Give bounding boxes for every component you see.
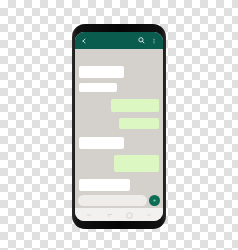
button[interactable]: Back — [79, 36, 89, 46]
button[interactable]: Back — [103, 209, 115, 221]
button[interactable]: Search — [136, 35, 147, 46]
button[interactable]: Home — [123, 209, 135, 221]
button[interactable]: Recents — [83, 209, 95, 221]
button[interactable]: More options — [149, 36, 159, 46]
button[interactable] — [79, 83, 117, 92]
button[interactable]: Message — [78, 195, 147, 206]
button[interactable]: Send — [149, 195, 160, 206]
